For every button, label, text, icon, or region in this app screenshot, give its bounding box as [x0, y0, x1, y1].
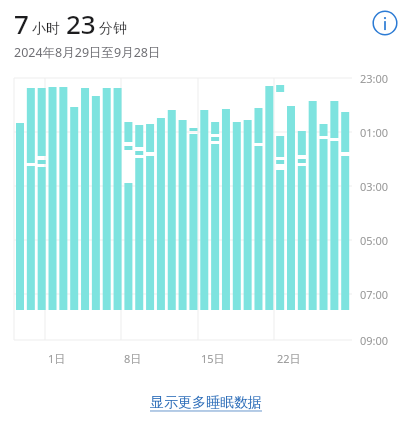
staticText: 03:00: [360, 179, 389, 194]
staticText: 23: [66, 6, 96, 41]
staticText: 22日: [277, 351, 301, 366]
staticText: 2024年8月29日至9月28日: [14, 44, 161, 61]
staticText: 8日: [124, 351, 142, 366]
staticText: 1日: [48, 351, 66, 366]
staticText: 05:00: [360, 233, 389, 248]
staticText: 15日: [201, 351, 225, 366]
button[interactable]: 显示更多睡眠数据: [136, 388, 276, 418]
staticText: 7: [14, 6, 29, 41]
staticText: 09:00: [360, 333, 389, 348]
staticText: 07:00: [360, 287, 389, 302]
staticText: 显示更多睡眠数据: [150, 394, 262, 412]
staticText: 分钟: [99, 20, 127, 38]
staticText: 小时: [32, 20, 60, 38]
staticText: 23:00: [360, 71, 389, 86]
staticText: 01:00: [360, 125, 389, 140]
button[interactable]: More information: [372, 10, 398, 36]
